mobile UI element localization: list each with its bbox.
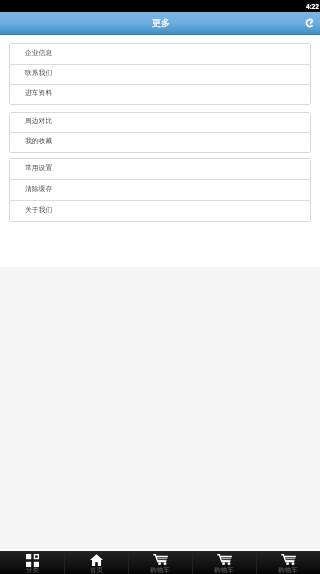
staticText: 企业信息 <box>25 48 53 57</box>
button[interactable]: 常用设置 <box>10 159 310 179</box>
button[interactable]: 周边对比 <box>10 113 310 132</box>
staticText: 购物车 <box>278 566 298 574</box>
button[interactable]: 首页 <box>64 551 128 574</box>
staticText: 更多 <box>152 17 170 28</box>
staticText: 4:22 <box>306 2 319 11</box>
staticText: 购物车 <box>214 566 234 574</box>
button[interactable]: 企业信息 <box>10 44 310 64</box>
staticText: 周边对比 <box>25 116 53 125</box>
button[interactable]: 购物车 <box>256 551 320 574</box>
staticText: 清除缓存 <box>25 184 53 193</box>
button[interactable]: 清除缓存 <box>10 180 310 200</box>
button[interactable]: 购物车 <box>192 551 256 574</box>
button[interactable]: Refresh <box>299 12 320 34</box>
staticText: 关于我们 <box>25 205 53 214</box>
button[interactable]: 关于我们 <box>10 201 310 221</box>
button[interactable]: 进车资料 <box>10 85 310 104</box>
staticText: 分类 <box>26 566 39 574</box>
button[interactable]: 购物车 <box>128 551 192 574</box>
button[interactable]: 我的收藏 <box>10 133 310 152</box>
button[interactable]: 联系我们 <box>10 65 310 84</box>
staticText: 进车资料 <box>25 88 53 97</box>
staticText: 常用设置 <box>25 163 53 172</box>
staticText: 我的收藏 <box>25 136 53 145</box>
button[interactable]: 分类 <box>0 551 64 574</box>
staticText: 联系我们 <box>25 68 53 77</box>
staticText: 首页 <box>90 566 103 574</box>
staticText: 购物车 <box>150 566 170 574</box>
